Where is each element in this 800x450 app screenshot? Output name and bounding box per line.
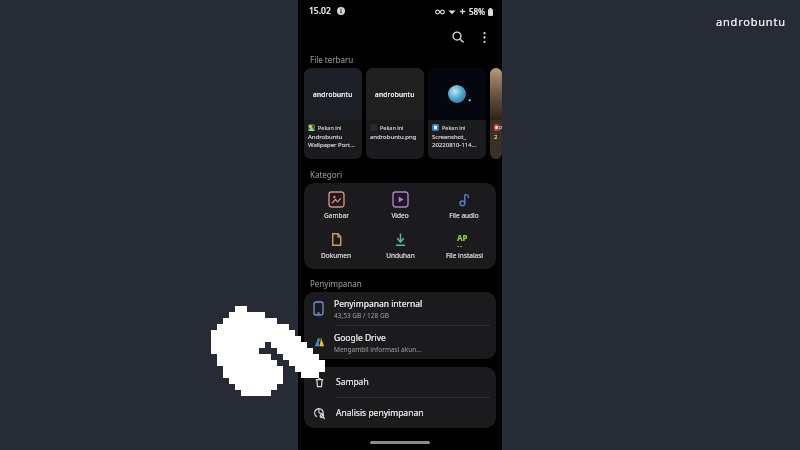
button[interactable]: androbuntu bbox=[366, 68, 424, 159]
staticText: Pekan ini bbox=[380, 124, 404, 131]
staticText: Pekan ini bbox=[318, 124, 342, 131]
staticText: Penyimpanan internal bbox=[334, 298, 423, 310]
staticText: File instalasi bbox=[446, 251, 483, 260]
staticText: File audio bbox=[449, 211, 479, 220]
staticText: Pekan ini bbox=[442, 124, 466, 131]
staticText: Dokumen bbox=[321, 251, 351, 260]
button[interactable]: Pekan ini bbox=[428, 68, 486, 159]
staticText: androbuntu bbox=[716, 14, 786, 29]
button[interactable]: Search bbox=[445, 24, 471, 50]
staticText: Google Drive bbox=[334, 332, 386, 344]
staticText: Sampah bbox=[336, 376, 369, 388]
button[interactable]: Unduhan bbox=[368, 230, 432, 262]
staticText: androbuntu.png bbox=[370, 133, 417, 141]
staticText: Analisis penyimpanan bbox=[336, 407, 424, 419]
staticText: 58% bbox=[469, 6, 485, 17]
button[interactable]: Video bbox=[368, 190, 432, 222]
staticText: Mengambil informasi akun... bbox=[334, 345, 422, 354]
staticText: APK bbox=[457, 232, 472, 247]
button[interactable]: Penyimpanan internal bbox=[304, 292, 496, 325]
staticText: 15.02 bbox=[309, 5, 331, 17]
staticText: Kategori bbox=[310, 169, 342, 180]
button[interactable]: APK bbox=[432, 230, 496, 262]
button[interactable]: Dokumen bbox=[304, 230, 368, 262]
button[interactable]: Pekan ini bbox=[490, 68, 502, 159]
button[interactable]: Google Drive bbox=[304, 326, 496, 359]
staticText: Gambar bbox=[324, 211, 349, 220]
button[interactable]: androbuntu bbox=[304, 68, 362, 159]
staticText: Penyimpanan bbox=[310, 278, 362, 289]
staticText: androbuntu bbox=[375, 90, 415, 99]
button[interactable]: Gambar bbox=[304, 190, 368, 222]
staticText: Screenshot_ 20220810-114... bbox=[432, 133, 477, 149]
staticText: 20220 12.jpg bbox=[494, 133, 499, 149]
button[interactable]: Analisis penyimpanan bbox=[304, 398, 496, 428]
button[interactable]: More options bbox=[471, 24, 497, 50]
staticText: File terbaru bbox=[310, 54, 354, 65]
staticText: Video bbox=[391, 211, 409, 220]
button[interactable]: Sampah bbox=[304, 367, 496, 397]
staticText: 43,53 GB / 128 GB bbox=[334, 311, 389, 320]
staticText: Androbuntu Wallpaper Port... bbox=[308, 133, 355, 149]
staticText: Unduhan bbox=[386, 251, 415, 260]
staticText: androbuntu bbox=[313, 90, 353, 99]
button[interactable]: File audio bbox=[432, 190, 496, 222]
